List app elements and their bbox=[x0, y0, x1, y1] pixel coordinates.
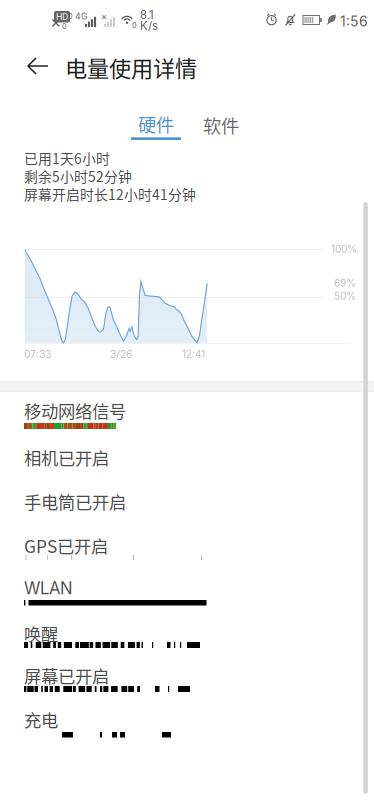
staticText: 0 bbox=[68, 12, 73, 21]
staticText: 手电筒已开启 bbox=[24, 489, 126, 514]
button[interactable]: 软件 bbox=[193, 112, 249, 142]
staticText: 屏幕已开启 bbox=[24, 663, 109, 688]
staticText: 12:41 bbox=[182, 348, 205, 360]
staticText: 3/26 bbox=[110, 348, 132, 361]
staticText: 已用1天6小时 bbox=[24, 148, 110, 168]
staticText: HD bbox=[56, 11, 68, 22]
staticText: 软件 bbox=[203, 112, 239, 138]
staticText: 07:33 bbox=[24, 348, 51, 361]
staticText: 屏幕开启时长12小时41分钟 bbox=[24, 184, 196, 204]
staticText: 剩余5小时52分钟 bbox=[24, 166, 132, 186]
staticText: 充电 bbox=[24, 707, 58, 732]
staticText: 100% bbox=[331, 243, 357, 255]
staticText: 唤醒 bbox=[24, 621, 58, 646]
staticText: 0 bbox=[132, 21, 137, 30]
staticText: 相机已开启 bbox=[24, 445, 109, 470]
staticText: 69% bbox=[334, 277, 356, 289]
staticText: 电量使用详情 bbox=[65, 51, 197, 83]
staticText: 4G bbox=[75, 11, 87, 21]
staticText: 硬件 bbox=[138, 111, 174, 137]
staticText: 8.1 bbox=[140, 8, 154, 22]
staticText: GPS已开启 bbox=[24, 533, 108, 558]
staticText: WLAN bbox=[24, 578, 73, 598]
staticText: × bbox=[101, 11, 107, 22]
staticText: K/s bbox=[140, 19, 158, 33]
staticText: 50% bbox=[334, 290, 356, 302]
button[interactable]: 硬件 bbox=[128, 112, 184, 139]
button[interactable]: 返回 bbox=[14, 44, 60, 88]
staticText: 0 bbox=[62, 22, 67, 31]
staticText: 移动网络信号 bbox=[24, 398, 126, 423]
staticText: 1:56 bbox=[340, 13, 368, 30]
